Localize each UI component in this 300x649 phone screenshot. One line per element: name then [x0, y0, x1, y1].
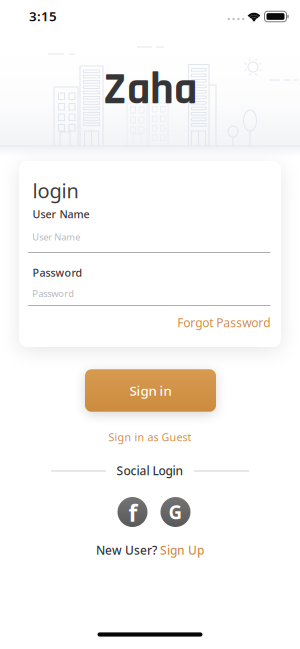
button[interactable]: Sign Up: [160, 542, 204, 558]
button[interactable]: Sign in with Google: [160, 497, 190, 527]
staticText: New User?: [96, 542, 157, 558]
staticText: Zaha: [103, 61, 197, 119]
staticText: Password: [32, 287, 74, 300]
staticText: f: [128, 498, 137, 528]
staticText: User Name: [32, 207, 89, 221]
staticText: G: [168, 500, 182, 524]
button[interactable]: Sign in as Guest: [108, 430, 191, 444]
button[interactable]: User Name: [28, 228, 270, 261]
button[interactable]: Sign in with Facebook: [117, 497, 147, 527]
button[interactable]: Password: [28, 284, 270, 312]
button[interactable]: Sign in: [85, 369, 216, 412]
staticText: Forgot Password: [177, 314, 270, 330]
button[interactable]: Forgot Password: [28, 314, 270, 330]
staticText: Social Login: [116, 462, 183, 478]
staticText: User Name: [32, 231, 80, 243]
staticText: login: [32, 177, 78, 204]
staticText: Password: [32, 265, 82, 280]
staticText: Sign in: [129, 382, 171, 399]
staticText: Sign Up: [160, 542, 204, 558]
staticText: Sign in as Guest: [108, 430, 191, 444]
staticText: 3:15: [29, 7, 57, 25]
